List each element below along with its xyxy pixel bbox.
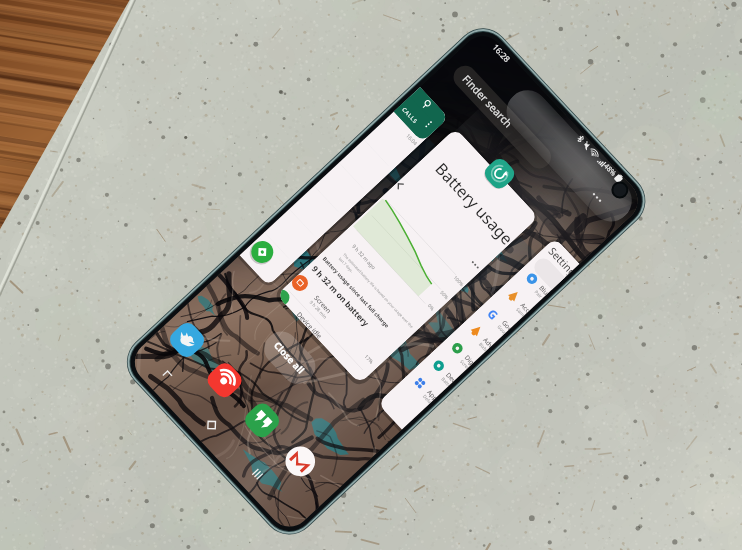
button[interactable]: Phone showing recent apps — [0, 0, 742, 550]
